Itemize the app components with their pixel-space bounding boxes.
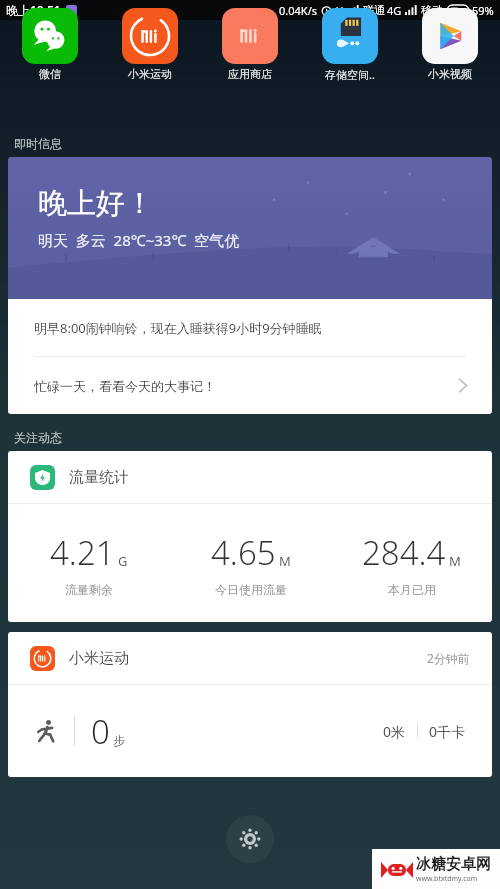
staticText: M (449, 552, 461, 570)
button[interactable]: Settings (226, 815, 274, 863)
staticText: 忙碌一天，看看今天的大事记！ (34, 378, 216, 394)
button[interactable]: 明早8:00闹钟响铃，现在入睡获得9小时9分钟睡眠 (8, 299, 492, 356)
staticText: 明天 多云 28℃~33℃ 空气优 (38, 230, 240, 250)
staticText: M (279, 552, 291, 570)
staticText: 小米运动 (128, 67, 172, 81)
button[interactable]: 晚上好！ (8, 157, 492, 299)
button[interactable]: 应用商店 (200, 20, 300, 128)
staticText: 0 (91, 709, 110, 754)
staticText: 4G (387, 3, 402, 18)
staticText: 移动 (421, 3, 443, 17)
button[interactable]: 小米运动 (8, 632, 492, 684)
staticText: 本月已用 (388, 582, 436, 597)
staticText: 晚上好！ (38, 185, 154, 222)
staticText: 流量剩余 (65, 582, 113, 597)
staticText: 联通 (363, 3, 385, 17)
staticText: 存储空间.. (325, 67, 375, 82)
staticText: 冰糖安卓网 (416, 855, 491, 874)
staticText: 4.65 (211, 530, 276, 575)
staticText: 关注动态 (14, 430, 62, 445)
staticText: 微信 (39, 67, 61, 81)
staticText: 0.04K/s (279, 3, 317, 18)
button[interactable]: 微信 (0, 20, 100, 128)
staticText: 0米 (383, 722, 406, 741)
button[interactable]: 小米运动 (100, 20, 200, 128)
staticText: 小米运动 (69, 649, 129, 668)
staticText: 284.4 (362, 530, 446, 575)
staticText: 步 (113, 733, 125, 748)
staticText: 即时信息 (14, 136, 62, 151)
button[interactable]: 流量统计 (8, 451, 492, 503)
staticText: 流量统计 (69, 468, 129, 487)
staticText: G (118, 552, 128, 570)
button[interactable]: 小米视频 (400, 20, 500, 128)
staticText: 小米视频 (428, 67, 472, 81)
staticText: www.btxtdmy.com (416, 874, 478, 884)
staticText: 4.21 (50, 530, 115, 575)
staticText: 2分钟前 (427, 650, 470, 666)
staticText: 0千卡 (429, 722, 466, 741)
button[interactable]: 忙碌一天，看看今天的大事记！ (8, 357, 492, 414)
staticText: 59% (472, 3, 494, 18)
staticText: 应用商店 (228, 67, 272, 81)
staticText: 晚上10:51 (6, 2, 61, 18)
staticText: 明早8:00闹钟响铃，现在入睡获得9小时9分钟睡眠 (34, 319, 322, 337)
staticText: 今日使用流量 (215, 582, 287, 597)
button[interactable]: 存储空间.. (300, 20, 400, 128)
